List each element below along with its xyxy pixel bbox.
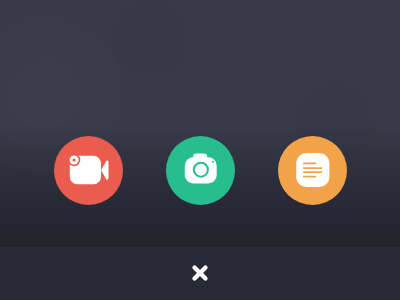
button[interactable]: Write note: [278, 136, 347, 205]
button[interactable]: Close: [184, 257, 216, 289]
button[interactable]: Record video: [54, 136, 123, 205]
button[interactable]: Take photo: [166, 136, 235, 205]
